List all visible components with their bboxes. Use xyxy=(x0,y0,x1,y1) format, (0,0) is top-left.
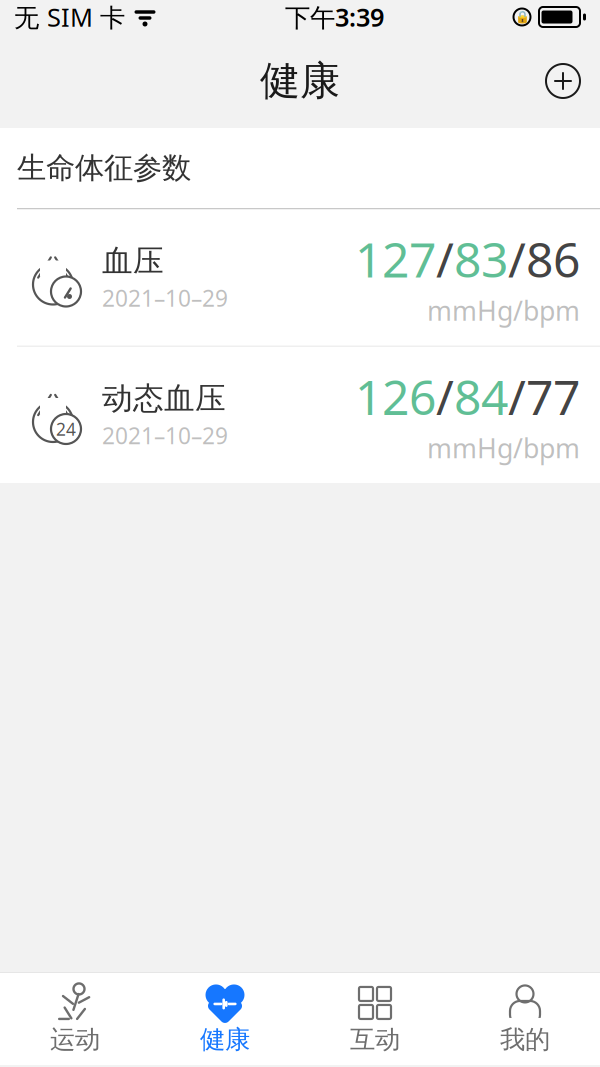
button[interactable]: 互动 xyxy=(300,973,450,1065)
button[interactable]: 添加 xyxy=(538,56,588,106)
staticText: 86 xyxy=(526,227,580,291)
staticText: 健康 xyxy=(260,56,340,105)
staticText: / xyxy=(508,364,526,428)
staticText: 互动 xyxy=(350,1024,400,1055)
staticText: 运动 xyxy=(50,1024,100,1055)
button[interactable]: 运动 xyxy=(0,973,150,1065)
staticText: / xyxy=(508,227,526,291)
button[interactable]: 健康 xyxy=(150,973,300,1065)
staticText: 24 xyxy=(56,417,76,440)
staticText: 🔒 xyxy=(514,10,529,24)
staticText: 83 xyxy=(454,227,508,291)
staticText: 127 xyxy=(355,227,436,291)
staticText: 生命体征参数 xyxy=(17,150,191,186)
button[interactable]: 我的 xyxy=(450,973,600,1065)
staticText: 我的 xyxy=(500,1024,550,1055)
staticText: 下午3:39 xyxy=(285,0,384,34)
button[interactable]: 血压 xyxy=(0,209,600,345)
staticText: 2021–10–29 xyxy=(102,283,228,313)
staticText: 126 xyxy=(355,364,436,428)
button[interactable]: 24 xyxy=(0,347,600,483)
staticText: 健康 xyxy=(200,1024,250,1055)
staticText: 血压 xyxy=(102,242,164,280)
staticText: mmHg/bpm xyxy=(427,430,580,466)
staticText: 84 xyxy=(454,364,508,428)
staticText: 77 xyxy=(526,364,580,428)
staticText: 无 SIM 卡 xyxy=(14,0,125,34)
staticText: / xyxy=(436,227,454,291)
staticText: 2021–10–29 xyxy=(102,420,228,450)
staticText: / xyxy=(436,364,454,428)
staticText: 动态血压 xyxy=(102,380,226,417)
staticText: mmHg/bpm xyxy=(427,293,580,328)
